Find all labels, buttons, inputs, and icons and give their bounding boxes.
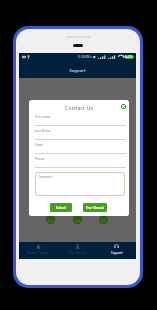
staticText: Support (19, 67, 136, 73)
button[interactable]: Contact option (46, 215, 55, 224)
button[interactable]: First name (35, 115, 126, 126)
button[interactable]: Close (121, 104, 126, 109)
button[interactable]: Email (35, 143, 126, 154)
button[interactable]: My account (58, 242, 97, 259)
button[interactable]: Patient Finance (19, 242, 58, 259)
staticText: Phone (35, 157, 45, 161)
staticText: Last Name (35, 129, 51, 133)
staticText: Email (35, 143, 43, 147)
button[interactable]: Phone (35, 157, 126, 168)
staticText: My account (69, 251, 86, 255)
staticText: First name (35, 115, 51, 119)
button[interactable]: Submit (50, 203, 72, 212)
button[interactable]: Last Name (35, 129, 126, 140)
staticText: Contact Us (29, 104, 129, 112)
button[interactable]: Support (97, 242, 136, 259)
button[interactable]: Contact option (99, 215, 108, 224)
staticText: User Manual (86, 206, 104, 210)
button[interactable]: Contact option (73, 215, 82, 224)
button[interactable]: User Manual (83, 203, 107, 212)
staticText: 14:31 (122, 54, 133, 59)
staticText: Comment (38, 175, 53, 179)
staticText: 0.00KB/s (78, 54, 92, 59)
button[interactable]: Comment (35, 172, 125, 196)
staticText: Support (111, 251, 123, 255)
staticText: Submit (56, 206, 66, 210)
staticText: Patient Finance (27, 251, 50, 255)
